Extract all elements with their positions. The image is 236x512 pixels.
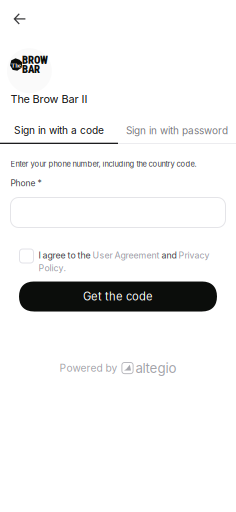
staticText: User Agreement [92, 250, 159, 261]
staticText: Privacy [178, 250, 209, 261]
staticText: Sign in with password [126, 124, 228, 137]
staticText: Sign in with a code [14, 124, 104, 136]
button[interactable]: User Agreement [92, 250, 159, 261]
button[interactable]: Get the code [19, 281, 217, 311]
staticText: Enter your phone number, including the c… [10, 159, 196, 169]
staticText: Phone * [10, 178, 41, 188]
staticText: The Brow Bar II [10, 92, 87, 106]
staticText: The [11, 61, 21, 69]
button[interactable]: Policy. [38, 263, 66, 273]
staticText: I agree to the [38, 250, 92, 261]
staticText: Powered by [59, 362, 117, 374]
button[interactable]: Back [6, 7, 32, 31]
button[interactable]: Privacy [178, 250, 209, 261]
button[interactable]: Sign in with password [118, 118, 236, 144]
button[interactable]: Sign in with a code [0, 118, 118, 144]
staticText: altegio [136, 360, 177, 376]
button[interactable]: I agree to the User Agreement and Privac… [19, 249, 33, 263]
staticText: Policy. [38, 263, 66, 273]
staticText: BAR [22, 63, 40, 76]
staticText: Get the code [83, 290, 153, 303]
staticText: and [159, 250, 178, 261]
staticText: BROW [22, 54, 48, 66]
